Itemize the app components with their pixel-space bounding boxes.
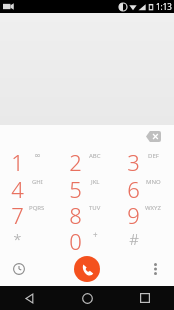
staticText: 5: [69, 174, 82, 200]
staticText: 8: [69, 200, 82, 226]
button[interactable]: Backspace: [142, 128, 164, 144]
staticText: MNO: [146, 178, 161, 186]
button[interactable]: 4: [0, 174, 58, 200]
button[interactable]: Call history: [6, 256, 32, 282]
button[interactable]: 8: [58, 200, 116, 226]
staticText: TUV: [89, 204, 101, 212]
staticText: DEF: [148, 152, 159, 160]
staticText: *: [13, 229, 22, 249]
staticText: 2: [69, 147, 82, 174]
button[interactable]: 9: [116, 200, 174, 226]
button[interactable]: #: [116, 226, 174, 252]
staticText: 0: [69, 226, 82, 252]
button[interactable]: Recent apps: [116, 286, 174, 310]
button[interactable]: More options: [142, 256, 168, 282]
staticText: JKL: [91, 178, 100, 186]
staticText: ∞: [34, 151, 41, 160]
button[interactable]: Call: [74, 256, 100, 282]
staticText: 1:13: [156, 1, 172, 12]
staticText: #: [129, 229, 139, 249]
staticText: PQRS: [29, 204, 45, 212]
button[interactable]: Home: [58, 286, 116, 310]
staticText: +: [93, 229, 98, 240]
button[interactable]: 7: [0, 200, 58, 226]
button[interactable]: 0: [58, 226, 116, 252]
staticText: 6: [127, 174, 140, 200]
button[interactable]: 6: [116, 174, 174, 200]
staticText: WXYZ: [145, 204, 161, 212]
button[interactable]: Back: [0, 286, 58, 310]
staticText: 3: [127, 147, 140, 174]
button[interactable]: *: [0, 226, 58, 252]
staticText: ABC: [89, 152, 101, 160]
button[interactable]: 3: [116, 147, 174, 174]
button[interactable]: 5: [58, 174, 116, 200]
button[interactable]: 2: [58, 147, 116, 174]
staticText: GHI: [32, 178, 43, 186]
button[interactable]: 1: [0, 147, 58, 174]
staticText: 1: [11, 147, 24, 174]
staticText: 9: [127, 200, 140, 226]
staticText: 7: [11, 200, 24, 226]
staticText: 4: [11, 174, 24, 200]
